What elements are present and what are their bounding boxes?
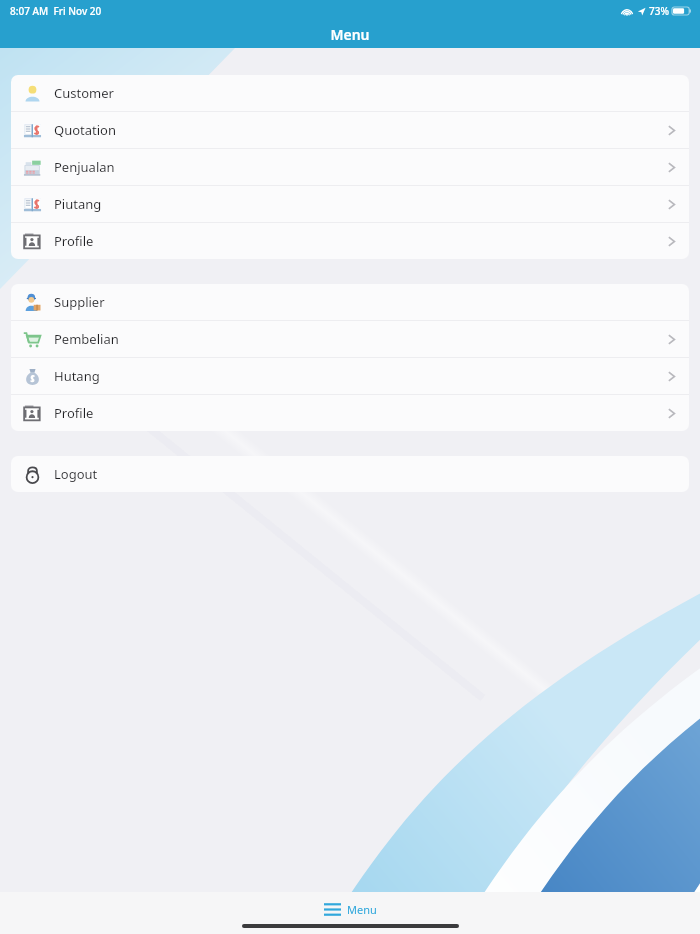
button[interactable]: Profile [11,223,689,259]
button[interactable]: Profile [11,395,689,431]
staticText: Customer [54,84,114,102]
staticText: Logout [54,465,98,483]
staticText: Menu [347,902,377,917]
staticText: Quotation [54,121,116,139]
button[interactable]: Hutang [11,358,689,394]
button[interactable]: Customer [11,75,689,111]
staticText: 73% [649,4,669,18]
staticText: Profile [54,232,94,250]
staticText: Penjualan [54,158,115,176]
staticText: 8:07 AM Fri Nov 20 [10,4,102,18]
button[interactable]: Logout [11,456,689,492]
staticText: Pembelian [54,330,119,348]
staticText: Piutang [54,195,102,213]
button[interactable]: Supplier [11,284,689,320]
button[interactable]: Penjualan [11,149,689,185]
button[interactable]: Pembelian [11,321,689,357]
button[interactable]: Menu [312,899,389,920]
button[interactable]: Quotation [11,112,689,148]
staticText: Menu [330,25,370,44]
staticText: Profile [54,404,94,422]
staticText: Supplier [54,293,105,311]
staticText: Hutang [54,367,100,385]
button[interactable]: Piutang [11,186,689,222]
